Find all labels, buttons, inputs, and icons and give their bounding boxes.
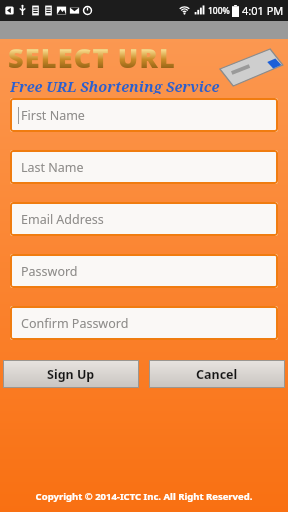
staticText: Cancel <box>196 366 238 383</box>
staticText: Sign Up <box>47 366 95 383</box>
button[interactable]: Password <box>10 254 278 288</box>
button[interactable]: Email Address <box>10 202 278 236</box>
button[interactable]: Cancel <box>149 360 285 388</box>
staticText: Copyright © 2014-ICTC Inc. All Right Res… <box>0 490 288 503</box>
staticText: Last Name <box>21 159 84 176</box>
staticText: 100% <box>208 5 230 17</box>
button[interactable]: Last Name <box>10 150 278 184</box>
staticText: Email Address <box>21 211 104 228</box>
other: Logo graphic <box>211 42 285 92</box>
button[interactable]: Sign Up <box>3 360 139 388</box>
button[interactable]: First Name <box>10 98 278 132</box>
staticText: SELECT URL <box>8 39 176 76</box>
staticText: Free URL Shortening Service <box>10 76 220 94</box>
button[interactable]: Confirm Password <box>10 306 278 340</box>
staticText: Confirm Password <box>21 315 129 332</box>
staticText: 4:01 PM <box>242 3 284 18</box>
staticText: Password <box>21 263 78 280</box>
staticText: First Name <box>21 107 85 124</box>
